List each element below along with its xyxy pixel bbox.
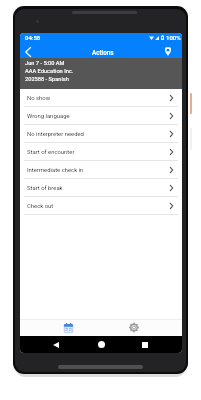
staticText: No show [27,95,51,102]
button[interactable]: No show [20,89,182,107]
staticText: Intermediate check in [27,167,84,174]
button[interactable]: Wrong language [20,107,182,125]
staticText: 100% [166,34,181,41]
staticText: 202588 - Spanish [25,76,69,83]
staticText: AAA Education Inc. [25,68,74,75]
staticText: Check out [27,203,54,210]
button[interactable]: Back [46,336,66,353]
staticText: Start of break [27,185,63,192]
button[interactable]: Start of encounter [20,143,182,161]
staticText: No interpreter needed [27,131,84,138]
button[interactable]: Home [91,336,111,353]
button[interactable]: Recent apps [135,336,155,353]
button[interactable]: Check out [20,197,182,215]
button[interactable]: No interpreter needed [20,125,182,143]
button[interactable]: Appointments [53,319,83,336]
staticText: Wrong language [27,113,70,120]
staticText: 04:58 [25,34,41,41]
staticText: Start of encounter [27,149,75,156]
staticText: Jun 7 - 5:00 AM [25,60,65,67]
button[interactable]: Location [160,42,182,58]
button[interactable]: Intermediate check in [20,161,182,179]
button[interactable]: Back [20,42,38,58]
button[interactable]: Settings [119,319,149,336]
staticText: Actions [92,49,114,56]
button[interactable]: Start of break [20,179,182,197]
